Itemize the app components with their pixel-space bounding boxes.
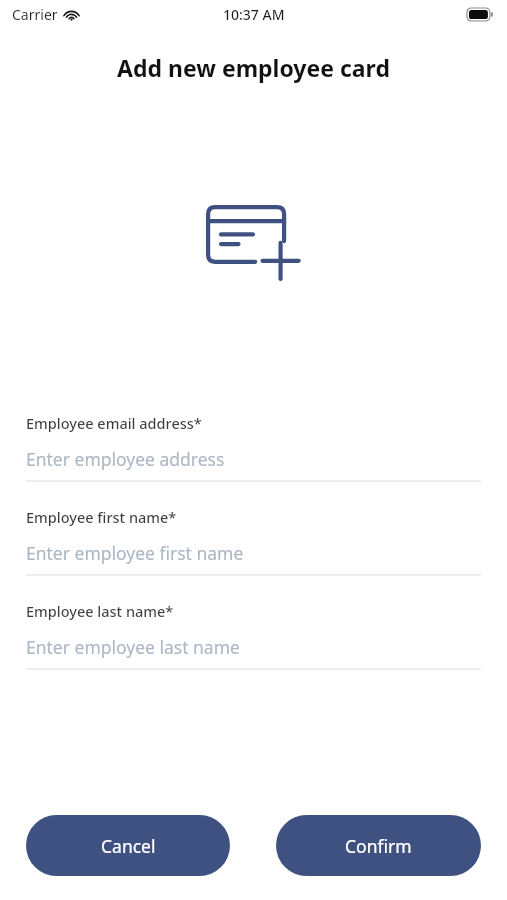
staticText: Enter employee first name xyxy=(26,541,244,565)
staticText: Carrier xyxy=(12,5,58,24)
staticText: Employee email address* xyxy=(26,413,202,433)
button[interactable]: Employee first name* xyxy=(26,507,481,576)
staticText: Add new employee card xyxy=(0,52,507,83)
staticText: Cancel xyxy=(101,834,156,858)
staticText: Confirm xyxy=(345,834,412,858)
button[interactable]: Confirm xyxy=(276,815,481,876)
staticText: 10:37 AM xyxy=(223,5,285,24)
staticText: Employee last name* xyxy=(26,601,174,621)
button[interactable]: Employee last name* xyxy=(26,601,481,670)
button[interactable]: Cancel xyxy=(26,815,230,876)
staticText: Employee first name* xyxy=(26,507,177,527)
staticText: Enter employee address xyxy=(26,447,225,471)
button[interactable]: Employee email address* xyxy=(26,413,481,482)
staticText: Enter employee last name xyxy=(26,635,240,659)
